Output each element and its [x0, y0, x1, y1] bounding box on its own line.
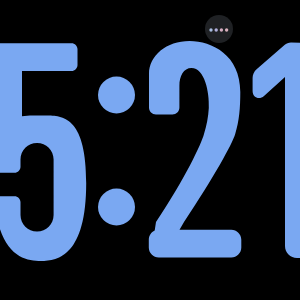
button[interactable]: Notifications	[205, 15, 233, 43]
